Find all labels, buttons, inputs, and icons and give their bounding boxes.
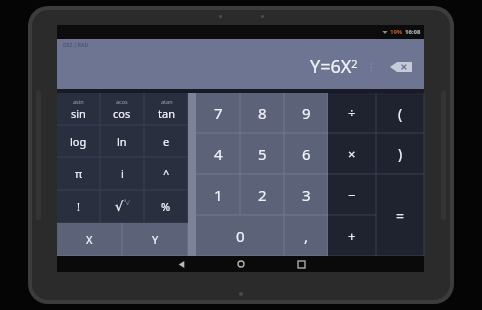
staticText: 0: [236, 226, 245, 246]
button[interactable]: (: [376, 93, 424, 133]
button[interactable]: Y: [122, 223, 188, 256]
button[interactable]: i: [100, 157, 144, 190]
button[interactable]: log: [57, 125, 100, 157]
staticText: 16:08: [405, 28, 421, 36]
staticText: atan: [161, 98, 173, 105]
button[interactable]: Recent apps: [281, 256, 321, 272]
staticText: ln: [117, 134, 127, 149]
staticText: Y: [152, 232, 159, 247]
staticText: asin: [73, 98, 84, 105]
staticText: 5: [258, 144, 267, 164]
staticText: log: [70, 134, 87, 149]
staticText: DEZ | RAD: [63, 42, 89, 49]
button[interactable]: !: [57, 190, 100, 223]
button[interactable]: 1: [196, 174, 240, 215]
staticText: 9: [302, 103, 311, 123]
button[interactable]: ÷: [328, 93, 376, 133]
button[interactable]: Backspace: [387, 58, 415, 76]
button[interactable]: 6: [284, 133, 328, 174]
button[interactable]: Home: [221, 256, 261, 272]
button[interactable]: ln: [100, 125, 144, 157]
button[interactable]: +: [328, 215, 376, 256]
staticText: ,: [304, 226, 309, 246]
button[interactable]: π: [57, 157, 100, 190]
button[interactable]: acos: [100, 93, 144, 125]
button[interactable]: 9: [284, 93, 328, 133]
button[interactable]: Back: [161, 256, 201, 272]
staticText: 7: [214, 103, 223, 123]
staticText: 2: [258, 185, 267, 205]
button[interactable]: ,: [284, 215, 328, 256]
staticText: acos: [116, 98, 128, 105]
button[interactable]: atan: [144, 93, 188, 125]
staticText: π: [75, 166, 83, 181]
button[interactable]: ): [376, 133, 424, 174]
staticText: 3: [302, 185, 311, 205]
staticText: +: [348, 227, 356, 245]
button[interactable]: ×: [328, 133, 376, 174]
staticText: ÷: [348, 104, 356, 122]
staticText: 1: [214, 185, 223, 205]
staticText: tan: [158, 106, 175, 121]
button[interactable]: =: [376, 174, 424, 256]
staticText: (: [398, 104, 403, 123]
staticText: ^: [163, 166, 170, 181]
button[interactable]: ^: [144, 157, 188, 190]
staticText: −: [348, 186, 356, 204]
staticText: cos: [113, 106, 131, 121]
staticText: sin: [71, 106, 86, 121]
staticText: ³√: [124, 199, 130, 207]
staticText: !: [77, 199, 80, 214]
button[interactable]: −: [328, 174, 376, 215]
staticText: X: [86, 232, 93, 247]
staticText: 8: [258, 103, 267, 123]
staticText: =: [396, 206, 405, 225]
button[interactable]: X: [57, 223, 122, 256]
button[interactable]: e: [144, 125, 188, 157]
staticText: √: [115, 199, 124, 214]
staticText: 4: [214, 144, 223, 164]
staticText: i: [121, 166, 124, 181]
button[interactable]: %: [144, 190, 188, 223]
staticText: 6: [302, 144, 311, 164]
staticText: %: [161, 199, 171, 214]
button[interactable]: 8: [240, 93, 284, 133]
staticText: ): [398, 144, 403, 163]
button[interactable]: 7: [196, 93, 240, 133]
button[interactable]: 3: [284, 174, 328, 215]
staticText: Y=6X2: [310, 54, 358, 79]
staticText: ×: [348, 145, 356, 163]
button[interactable]: asin: [57, 93, 100, 125]
button[interactable]: 5: [240, 133, 284, 174]
button[interactable]: √: [100, 190, 144, 223]
button[interactable]: 4: [196, 133, 240, 174]
staticText: e: [163, 134, 170, 149]
button[interactable]: 0: [196, 215, 284, 256]
button[interactable]: 2: [240, 174, 284, 215]
staticText: 19%: [390, 28, 403, 36]
